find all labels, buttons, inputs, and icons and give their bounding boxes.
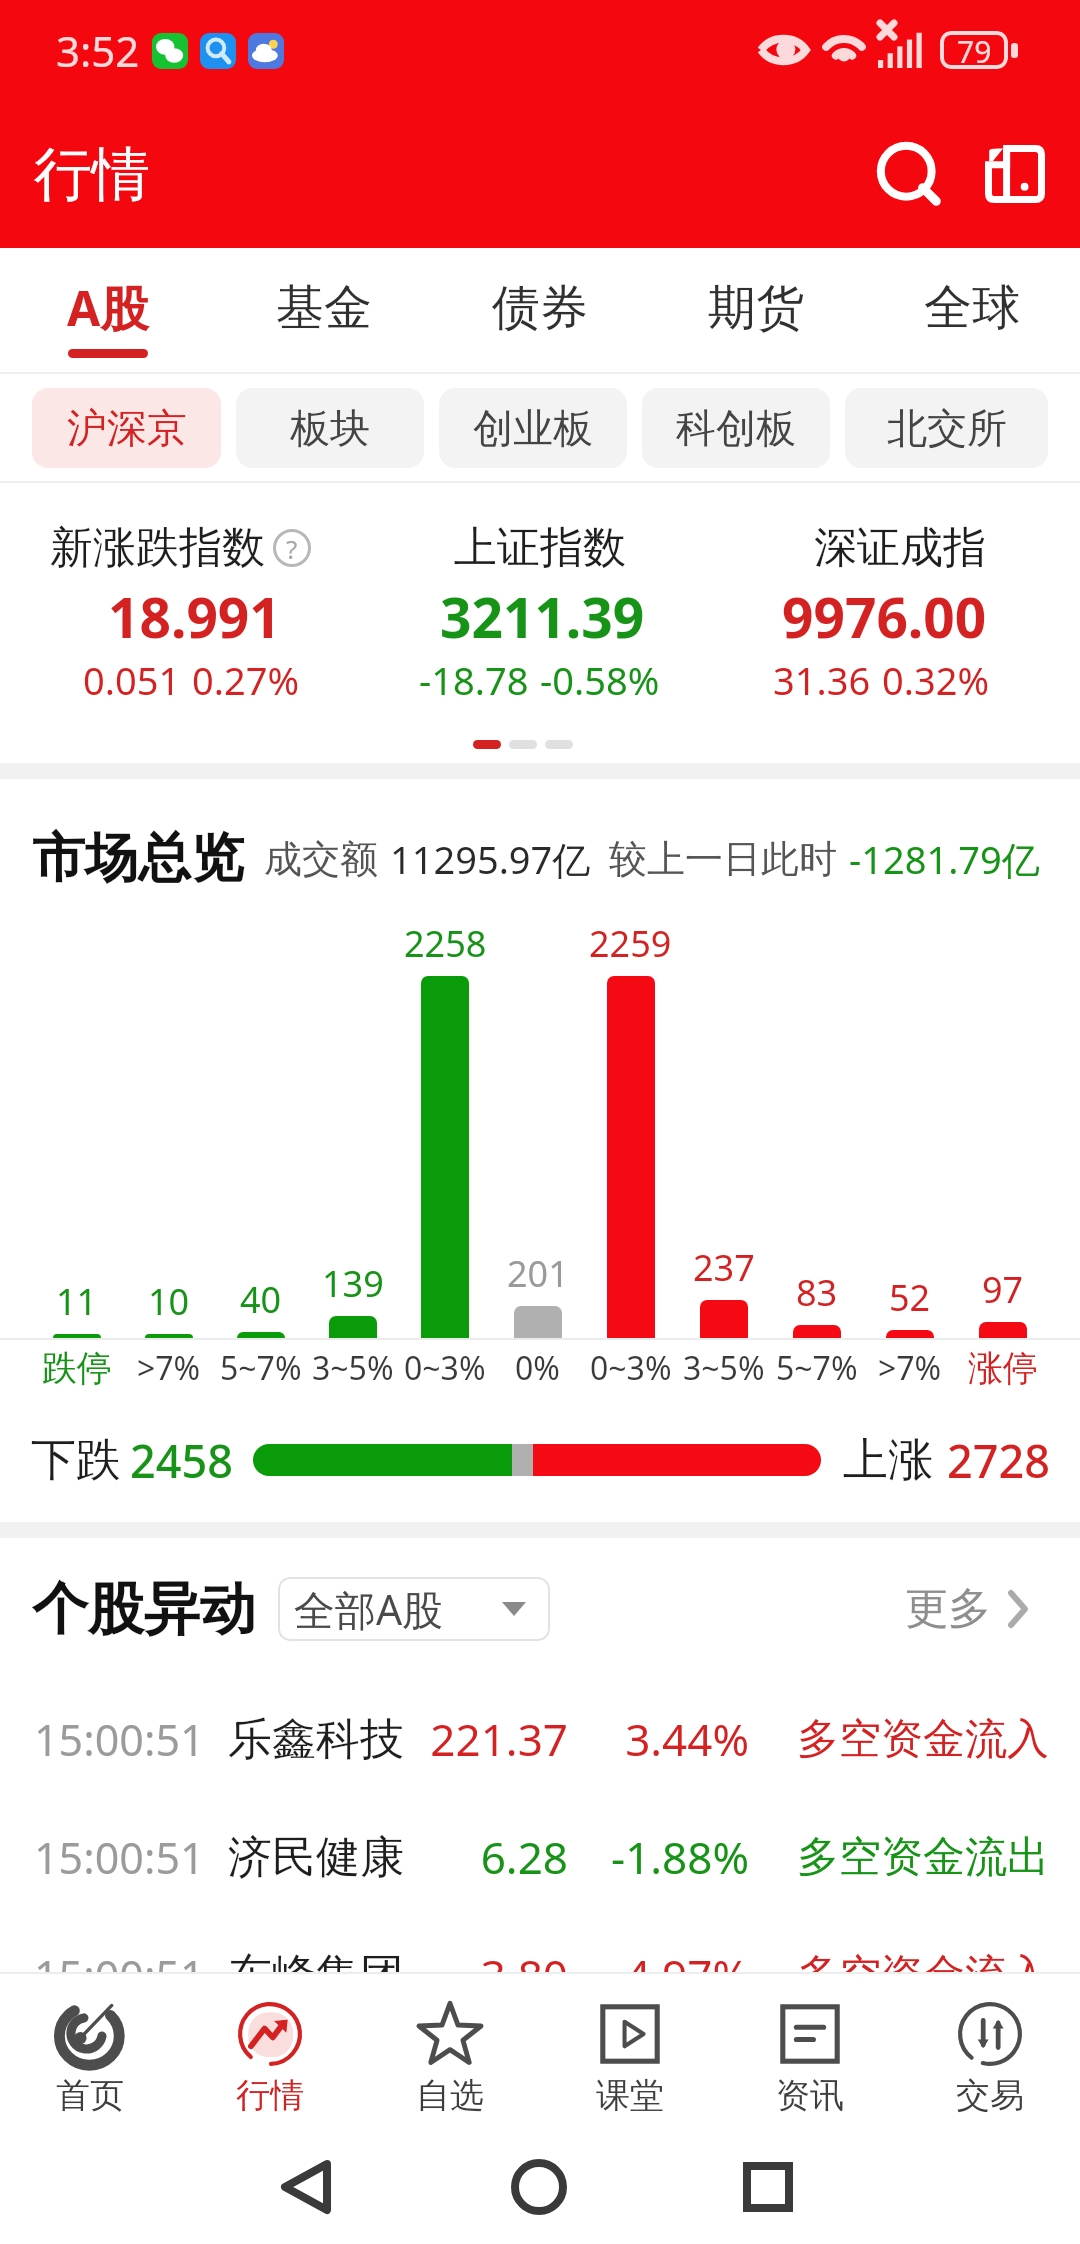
staticText: 11295.97亿	[390, 833, 591, 885]
staticText: 东峰集团	[228, 1948, 404, 2003]
staticText: 更多	[905, 1582, 991, 1636]
button[interactable]: 资讯	[720, 1974, 900, 2130]
staticText: 139	[322, 1259, 384, 1308]
staticText: 237	[693, 1243, 755, 1292]
staticText: 0~3%	[590, 1346, 672, 1390]
button[interactable]: Recents	[713, 2132, 823, 2242]
button[interactable]: 科创板	[642, 388, 830, 468]
staticText: 上证指数	[454, 521, 626, 575]
staticText: 83	[796, 1268, 838, 1317]
button[interactable]: 创业板	[439, 388, 627, 468]
staticText: 行情	[34, 138, 150, 211]
staticText: 97	[982, 1265, 1024, 1314]
staticText: 全球	[924, 278, 1020, 338]
button[interactable]: 15:00:51	[0, 1798, 1080, 1916]
staticText: 课堂	[596, 2074, 664, 2117]
staticText: 多空资金流入	[797, 1713, 1049, 1766]
button[interactable]: 基金	[216, 248, 432, 372]
button[interactable]: 上证指数	[360, 521, 720, 706]
staticText: 2259	[589, 919, 672, 968]
staticText: 15:00:51	[34, 1946, 205, 2005]
staticText: 31.36	[773, 654, 871, 706]
staticText: 多空资金流出	[797, 1831, 1049, 1884]
staticText: 科创板	[676, 403, 796, 453]
button[interactable]: 自选	[360, 1974, 540, 2130]
staticText: 沪深京	[67, 403, 187, 453]
button[interactable]: Home	[484, 2132, 594, 2242]
staticText: 0.051	[83, 654, 181, 706]
staticText: 3~5%	[683, 1346, 765, 1390]
staticText: 3.44%	[569, 1709, 749, 1769]
staticText: 济民健康	[228, 1830, 404, 1885]
staticText: 79	[957, 31, 992, 69]
staticText: >7%	[878, 1346, 942, 1390]
staticText: -1281.79亿	[849, 833, 1040, 885]
staticText: 板块	[290, 403, 370, 453]
button[interactable]: 债券	[432, 248, 648, 372]
button[interactable]: A股	[0, 248, 216, 372]
staticText: A股	[67, 275, 149, 341]
button[interactable]: 交易	[900, 1974, 1080, 2130]
staticText: 52	[889, 1273, 931, 1322]
staticText: 基金	[276, 278, 372, 338]
staticText: 期货	[708, 278, 804, 338]
staticText: 0.27%	[192, 654, 299, 706]
staticText: 首页	[56, 2074, 124, 2117]
button[interactable]: 课堂	[540, 1974, 720, 2130]
staticText: 10	[148, 1277, 190, 1326]
staticText: 成交额	[264, 835, 378, 883]
button[interactable]: 深证成指	[720, 521, 1080, 706]
button[interactable]: 首页	[0, 1974, 180, 2130]
staticText: 3:52	[56, 22, 140, 79]
staticText: 40	[240, 1275, 282, 1324]
staticText: 15:00:51	[34, 1828, 205, 1887]
staticText: 2728	[947, 1430, 1050, 1491]
button[interactable]: 行情	[180, 1974, 360, 2130]
staticText: 0~3%	[404, 1346, 486, 1390]
button[interactable]: 15:00:51	[0, 1680, 1080, 1798]
staticText: 221.37	[378, 1709, 568, 1769]
staticText: 4.97%	[569, 1945, 749, 2005]
button[interactable]: Market report	[961, 120, 1069, 228]
staticText: ?	[286, 531, 298, 566]
staticText: 较上一日此时	[609, 835, 837, 883]
staticText: 深证成指	[814, 521, 986, 575]
staticText: 15:00:51	[34, 1710, 205, 1769]
staticText: 个股异动	[32, 1574, 256, 1645]
staticText: 9976.00	[782, 579, 987, 654]
staticText: 下跌	[31, 1432, 121, 1489]
staticText: 多空资金流入	[797, 1949, 1049, 2002]
button[interactable]: 全部A股	[278, 1577, 550, 1641]
button[interactable]: 15:00:51	[0, 1916, 1080, 2034]
staticText: 市场总览	[32, 825, 244, 892]
button[interactable]: Back	[251, 2132, 361, 2242]
staticText: 乐鑫科技	[228, 1712, 404, 1767]
staticText: 资讯	[776, 2074, 844, 2117]
staticText: -18.78	[419, 654, 529, 706]
staticText: 上涨	[843, 1432, 933, 1489]
button[interactable]: 全球	[864, 248, 1080, 372]
staticText: 债券	[492, 278, 588, 338]
staticText: -1.88%	[569, 1827, 749, 1887]
staticText: 3~5%	[312, 1346, 394, 1390]
staticText: 2258	[404, 919, 487, 968]
button[interactable]: 期货	[648, 248, 864, 372]
button[interactable]: 沪深京	[32, 388, 221, 468]
staticText: 2458	[130, 1430, 233, 1491]
staticText: 行情	[236, 2074, 304, 2117]
staticText: 跌停	[42, 1346, 112, 1390]
staticText: 18.991	[108, 579, 281, 654]
staticText: 6.28	[378, 1827, 568, 1887]
button[interactable]: 板块	[236, 388, 424, 468]
staticText: 北交所	[887, 403, 1007, 453]
staticText: 3.80	[378, 1945, 568, 2005]
button[interactable]: 更多	[905, 1582, 1050, 1636]
staticText: 交易	[956, 2074, 1024, 2117]
staticText: 201	[507, 1249, 569, 1298]
button[interactable]: Search	[857, 122, 961, 226]
button[interactable]: 北交所	[845, 388, 1048, 468]
button[interactable]: 新涨跌指数	[0, 521, 360, 706]
staticText: 11	[56, 1277, 98, 1326]
staticText: 3211.39	[440, 579, 645, 654]
staticText: 创业板	[473, 403, 593, 453]
